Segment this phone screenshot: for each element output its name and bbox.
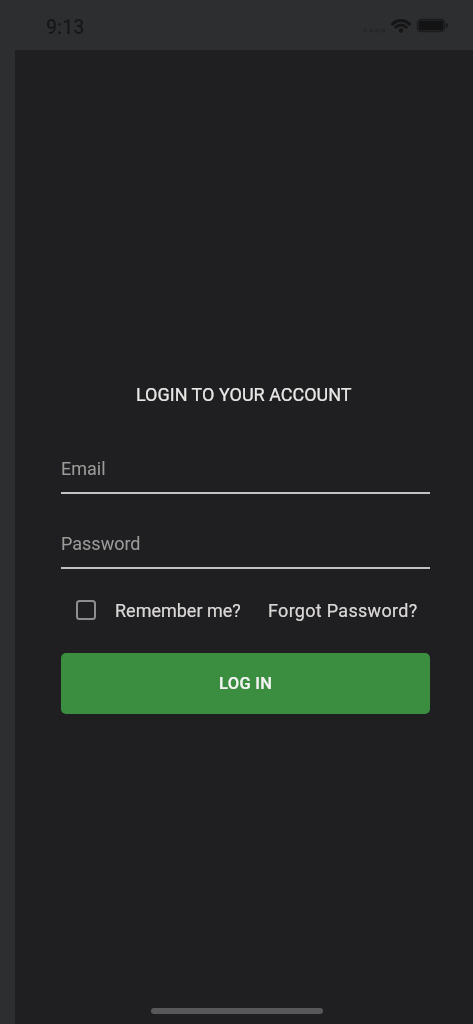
button[interactable]: [76, 600, 96, 620]
staticText: LOGIN TO YOUR ACCOUNT: [136, 384, 352, 405]
button[interactable]: Email: [61, 451, 430, 494]
button[interactable]: Forgot Password?: [268, 600, 418, 621]
staticText: Email: [61, 458, 106, 479]
button[interactable]: LOG IN: [61, 653, 430, 714]
staticText: 9:13: [46, 16, 85, 39]
button[interactable]: Password: [61, 526, 430, 569]
staticText: LOG IN: [219, 674, 273, 693]
button[interactable]: Remember me?: [115, 600, 241, 621]
staticText: Password: [61, 533, 141, 554]
